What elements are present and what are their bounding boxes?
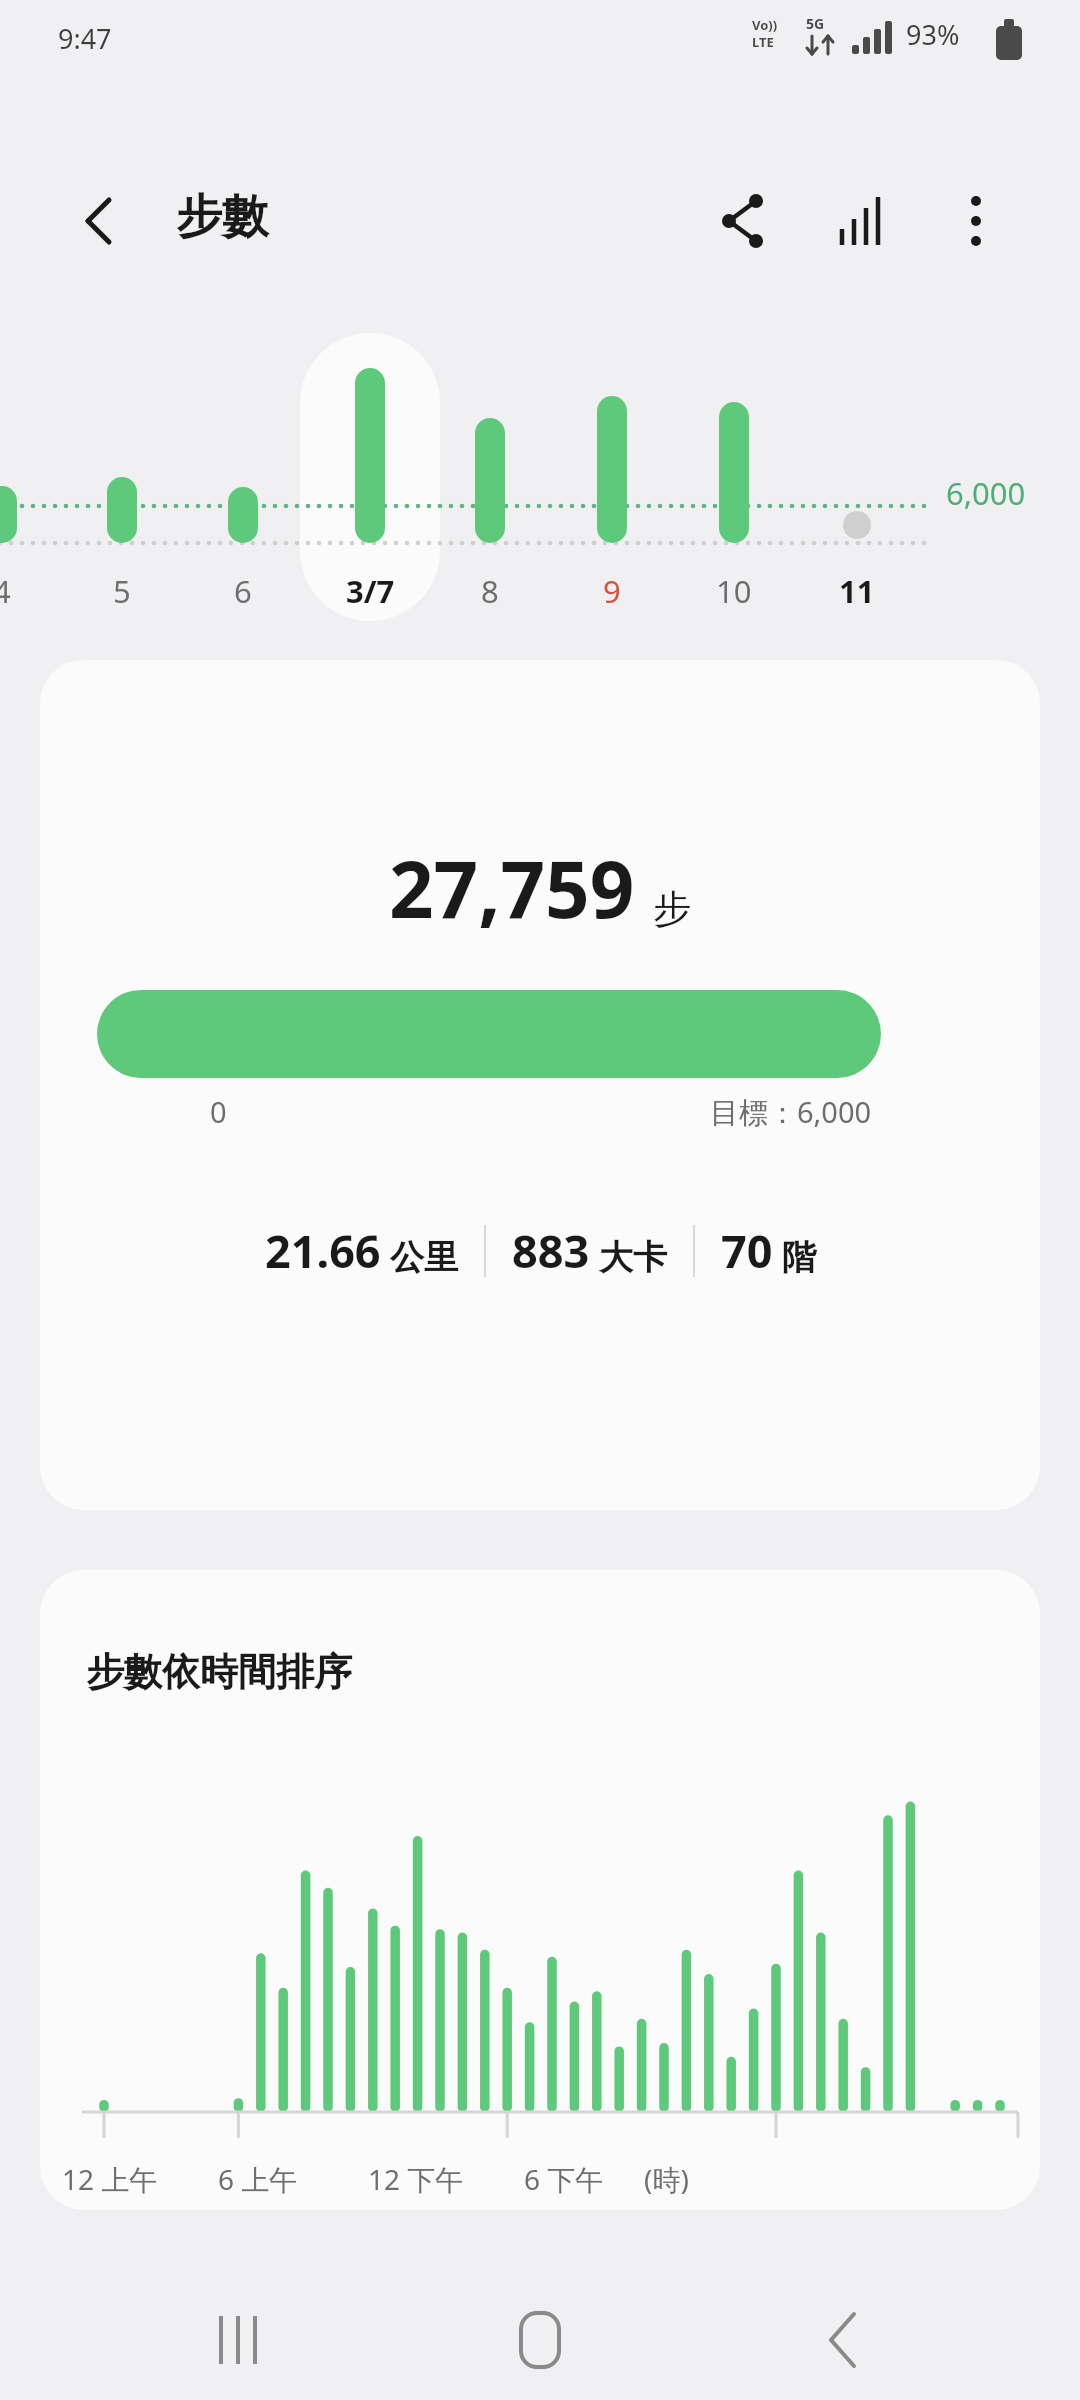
button[interactable]: 3/7 <box>310 570 430 612</box>
staticText: 70 <box>721 1220 773 1281</box>
staticText: 9 <box>603 570 621 612</box>
button[interactable]: More options <box>940 185 1012 257</box>
button[interactable]: 70 <box>721 1220 816 1281</box>
staticText: 步 <box>653 885 691 933</box>
staticText: 4 <box>0 570 11 612</box>
button[interactable]: 4 <box>0 570 62 612</box>
staticText: 10 <box>716 570 752 612</box>
staticText: 3/7 <box>346 570 395 612</box>
staticText: 9:47 <box>58 20 112 57</box>
staticText: 目標：6,000 <box>710 1092 872 1132</box>
staticText: 8 <box>481 570 499 612</box>
staticText: 大卡 <box>599 1236 667 1279</box>
button[interactable]: Back <box>794 2292 890 2388</box>
staticText: 6 下午 <box>524 2160 604 2198</box>
staticText: 12 下午 <box>368 2160 464 2198</box>
staticText: LTE <box>752 33 774 51</box>
button[interactable]: 11 <box>797 570 917 612</box>
button[interactable]: Chart <box>828 185 900 257</box>
button[interactable]: Home <box>492 2292 588 2388</box>
button[interactable]: 6 <box>183 570 303 612</box>
button[interactable]: 883 <box>512 1220 667 1281</box>
staticText: Vo)) <box>752 16 778 34</box>
button[interactable]: Back <box>62 185 134 257</box>
staticText: 公里 <box>390 1236 458 1279</box>
staticText: 27,759 <box>389 835 635 941</box>
button[interactable] <box>300 333 440 621</box>
button[interactable]: 步數 <box>176 188 268 246</box>
button[interactable]: 步數依時間排序 <box>40 1570 1040 2210</box>
staticText: 12 上午 <box>62 2160 158 2198</box>
staticText: (時) <box>644 2160 689 2198</box>
button[interactable]: 5 <box>62 570 182 612</box>
button[interactable]: 10 <box>674 570 794 612</box>
button[interactable]: Recent apps <box>190 2292 286 2388</box>
staticText: 11 <box>839 570 875 612</box>
staticText: 6 <box>234 570 252 612</box>
staticText: 0 <box>210 1092 227 1131</box>
staticText: 5G <box>806 14 825 33</box>
staticText: 6 上午 <box>218 2160 298 2198</box>
staticText: 步數依時間排序 <box>86 1648 352 1696</box>
button[interactable]: 9 <box>552 570 672 612</box>
button[interactable]: 27,759 <box>40 660 1040 1510</box>
staticText: 5 <box>113 570 131 612</box>
staticText: 步數 <box>176 188 268 246</box>
staticText: 883 <box>512 1220 590 1281</box>
staticText: 93% <box>906 16 960 53</box>
staticText: 21.66 <box>265 1220 381 1281</box>
staticText: 階 <box>782 1236 816 1279</box>
button[interactable]: Share <box>706 185 778 257</box>
staticText: 6,000 <box>946 472 1026 514</box>
button[interactable]: 8 <box>430 570 550 612</box>
button[interactable]: 21.66 <box>265 1220 458 1281</box>
